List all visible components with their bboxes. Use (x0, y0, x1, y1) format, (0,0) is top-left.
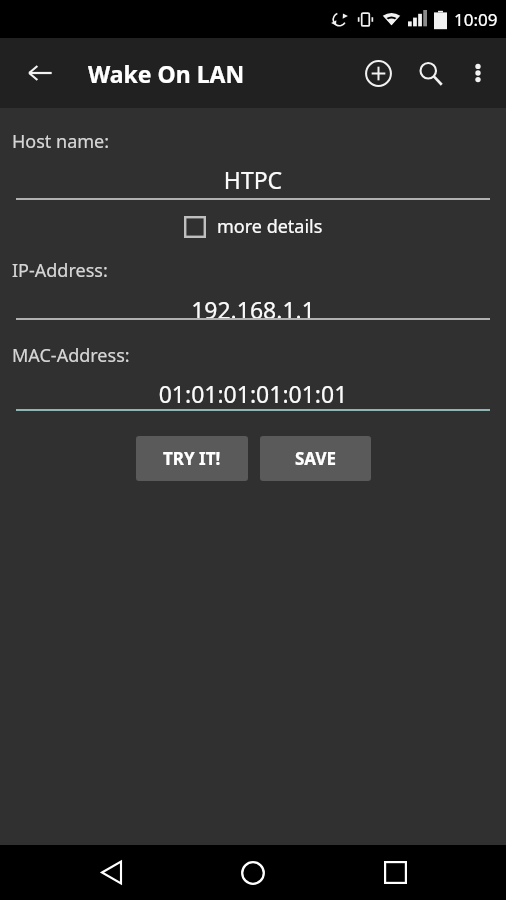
staticText: SAVE (295, 447, 337, 470)
staticText: HTPC (0, 164, 506, 195)
staticText: MAC-Address: (12, 343, 130, 368)
button[interactable]: Search (404, 47, 456, 99)
staticText: 10:09 (454, 8, 498, 31)
button[interactable]: more details (180, 212, 327, 241)
button[interactable]: Recent apps (364, 845, 426, 900)
button[interactable]: TRY IT! (136, 436, 248, 481)
staticText: more details (217, 214, 323, 239)
button[interactable]: Add (352, 47, 404, 99)
button[interactable]: Back (14, 47, 66, 99)
button[interactable]: SAVE (260, 436, 371, 481)
staticText: Wake On LAN (88, 58, 245, 89)
staticText: Host name: (12, 129, 110, 154)
staticText: 192.168.1.1 (0, 294, 506, 325)
staticText: IP-Address: (12, 258, 108, 283)
button[interactable]: Back (80, 845, 142, 900)
staticText: TRY IT! (163, 447, 221, 470)
staticText: 01:01:01:01:01:01 (0, 378, 506, 409)
button[interactable]: More options (456, 51, 500, 95)
button[interactable]: Home (222, 845, 284, 900)
